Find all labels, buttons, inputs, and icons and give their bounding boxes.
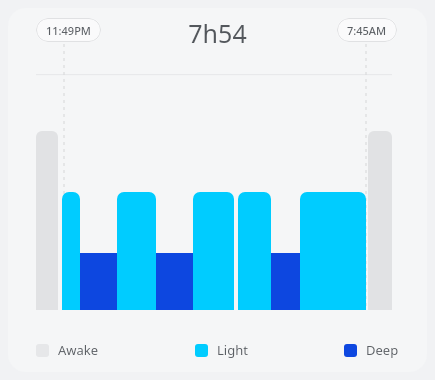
button[interactable]: Light <box>195 339 248 361</box>
button[interactable]: Sleep stages chart <box>0 0 435 380</box>
staticText: 7:45AM <box>347 23 387 38</box>
staticText: Deep <box>366 341 399 359</box>
staticText: 7h54 <box>188 16 247 50</box>
staticText: 11:49PM <box>46 23 91 38</box>
staticText: Awake <box>58 341 99 359</box>
button[interactable]: 7:45AM <box>337 18 397 42</box>
button[interactable]: Awake <box>36 339 99 361</box>
staticText: Light <box>217 341 248 359</box>
button[interactable]: 11:49PM <box>36 18 101 42</box>
button[interactable]: Deep <box>344 339 399 361</box>
